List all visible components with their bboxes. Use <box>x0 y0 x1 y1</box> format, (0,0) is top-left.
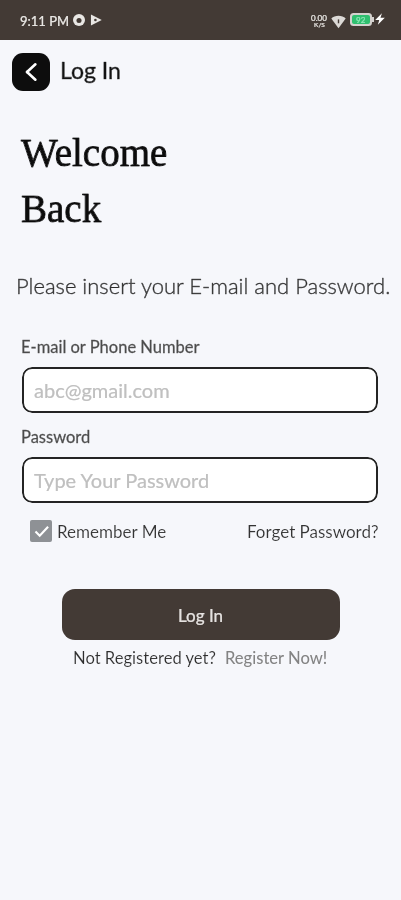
button[interactable]: Not Registered yet? <box>0 648 401 668</box>
staticText: E-mail or Phone Number <box>21 337 200 357</box>
staticText: abc@gmail.com <box>34 378 170 402</box>
staticText: 9:11 PM <box>20 13 70 29</box>
staticText: 92 <box>356 15 366 24</box>
staticText: 0.00 <box>311 13 327 23</box>
staticText: Not Registered yet? <box>73 648 216 668</box>
button[interactable]: Back <box>12 53 50 91</box>
button[interactable]: Log In <box>62 589 340 640</box>
staticText: Back <box>21 187 102 230</box>
staticText: Register Now! <box>225 648 328 668</box>
staticText: Welcome <box>21 131 168 174</box>
staticText: Type Your Password <box>34 468 210 492</box>
staticText: Password <box>21 427 91 447</box>
staticText: Back <box>21 187 102 230</box>
staticText: E-mail or Phone Number <box>21 337 200 357</box>
staticText: Log In <box>178 605 224 625</box>
staticText: Password <box>21 427 91 447</box>
button[interactable]: abc@gmail.com <box>22 367 378 413</box>
staticText: Welcome <box>21 131 168 174</box>
staticText: Please insert your E-mail and Password. <box>16 272 391 298</box>
staticText: Log In <box>60 56 121 84</box>
staticText: Log In <box>60 56 121 84</box>
button[interactable]: Type Your Password <box>22 457 378 503</box>
staticText: K/S <box>314 21 325 29</box>
button[interactable]: Remember Me <box>30 520 167 542</box>
staticText: Remember Me <box>57 521 167 541</box>
staticText: Please insert your E-mail and Password. <box>16 272 391 298</box>
button[interactable]: Forget Password? <box>247 521 379 541</box>
